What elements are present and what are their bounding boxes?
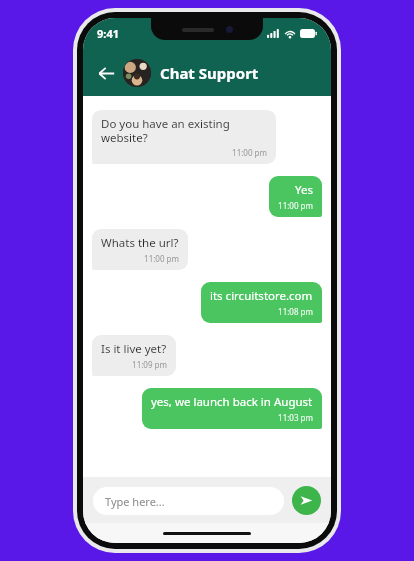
staticText: Yes bbox=[295, 182, 313, 198]
staticText: 11:00 pm bbox=[144, 253, 179, 264]
button[interactable]: Back bbox=[91, 58, 121, 88]
button[interactable]: Yes bbox=[269, 176, 322, 217]
staticText: Is it live yet? bbox=[101, 341, 167, 357]
button[interactable]: Send bbox=[292, 486, 321, 515]
staticText: Do you have an existing website? bbox=[101, 116, 267, 145]
staticText: its circuitstore.com bbox=[210, 288, 313, 304]
button[interactable]: its circuitstore.com bbox=[201, 282, 322, 323]
staticText: 11:00 pm bbox=[232, 147, 267, 158]
button[interactable]: Whats the url? bbox=[92, 229, 188, 270]
button[interactable]: yes, we launch back in August bbox=[142, 388, 322, 429]
staticText: 9:41 bbox=[97, 26, 119, 41]
button[interactable]: Is it live yet? bbox=[92, 335, 176, 376]
button[interactable]: Type here... bbox=[93, 487, 284, 515]
staticText: 11:03 pm bbox=[278, 412, 313, 423]
staticText: yes, we launch back in August bbox=[151, 394, 313, 410]
staticText: Type here... bbox=[105, 494, 165, 509]
staticText: Chat Support bbox=[160, 63, 259, 83]
button[interactable]: Contact avatar bbox=[123, 59, 151, 87]
staticText: 11:08 pm bbox=[278, 306, 313, 317]
staticText: Whats the url? bbox=[101, 235, 179, 251]
staticText: 11:00 pm bbox=[278, 200, 313, 211]
button[interactable]: Do you have an existing website? bbox=[92, 110, 276, 164]
staticText: 11:09 pm bbox=[132, 359, 167, 370]
